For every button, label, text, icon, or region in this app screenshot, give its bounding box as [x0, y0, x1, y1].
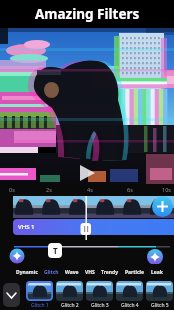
staticText: 2s: [46, 186, 52, 193]
staticText: 10s: [162, 186, 171, 193]
button[interactable]: Glitch: [44, 269, 59, 276]
button[interactable]: Glitch 2: [56, 281, 83, 309]
button[interactable]: Wave: [65, 269, 79, 276]
staticText: Glitch 3: [91, 302, 109, 309]
button[interactable]: Glitch 3: [86, 281, 113, 309]
button[interactable]: [3, 283, 20, 307]
staticText: Glitch 1: [31, 302, 49, 309]
staticText: T: [53, 245, 58, 256]
button[interactable]: VHS: [85, 269, 95, 276]
staticText: Glitch 5: [151, 302, 169, 309]
staticText: Glitch 4: [121, 302, 139, 309]
staticText: Glitch 2: [61, 302, 79, 309]
staticText: 0s: [9, 186, 15, 193]
button[interactable]: [152, 196, 173, 217]
button[interactable]: Particle: [125, 269, 145, 276]
button[interactable]: Glitch 1: [26, 281, 53, 309]
button[interactable]: T: [48, 243, 62, 258]
button[interactable]: Trendy: [101, 269, 119, 276]
button[interactable]: Leak: [151, 269, 163, 276]
button[interactable]: VHS 1: [13, 219, 174, 235]
button[interactable]: [0, 28, 174, 184]
button[interactable]: Glitch 4: [116, 281, 143, 309]
button[interactable]: Dynamic: [16, 269, 38, 276]
staticText: 6s: [127, 186, 133, 193]
staticText: VHS 1: [18, 223, 35, 231]
button[interactable]: [0, 196, 174, 218]
staticText: Amazing Filters: [35, 5, 140, 23]
staticText: 4s: [87, 186, 93, 193]
button[interactable]: Glitch 5: [146, 281, 173, 309]
